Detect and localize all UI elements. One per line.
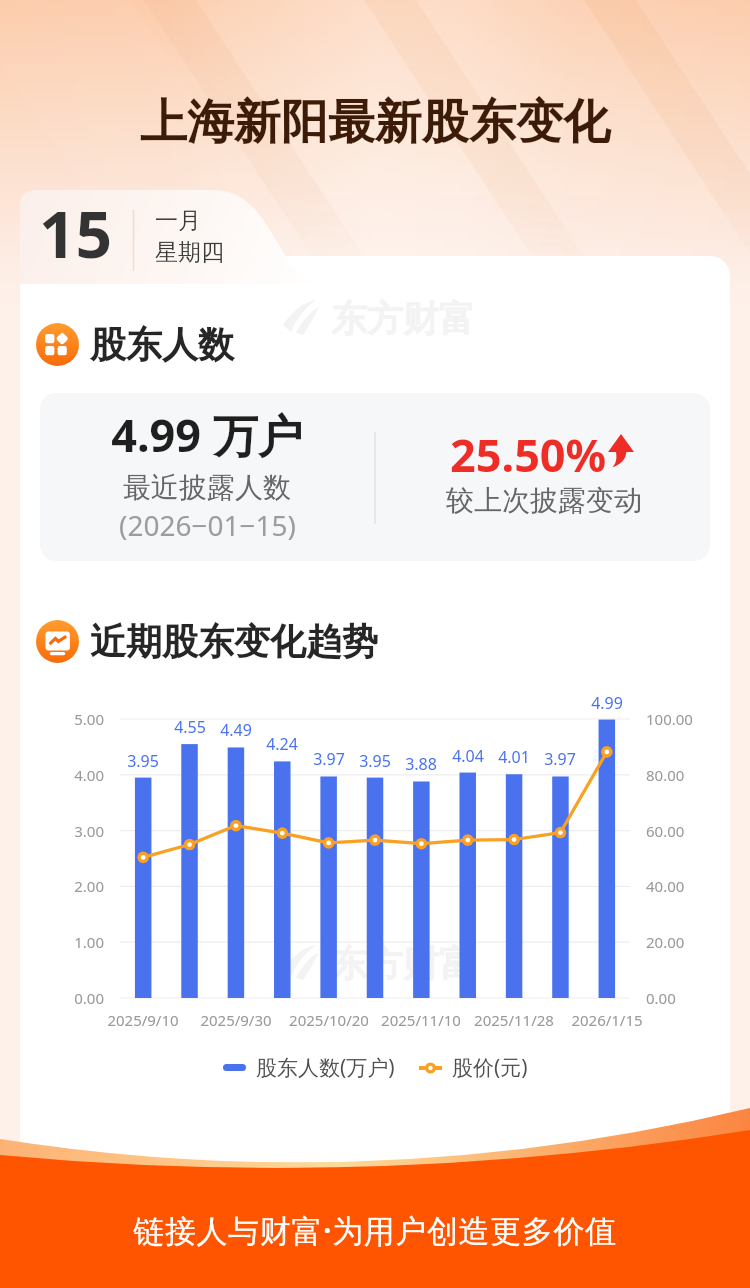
staticText: 股东人数(万户) xyxy=(256,1053,395,1082)
staticText: 股东人数 xyxy=(90,322,234,367)
staticText: 80.00 xyxy=(646,765,685,785)
button[interactable]: 股东人数 xyxy=(36,322,234,367)
staticText: 最近披露人数 xyxy=(123,470,291,505)
staticText: 股价(元) xyxy=(452,1053,528,1082)
staticText: 3.88 xyxy=(405,753,437,775)
staticText: 较上次披露变动 xyxy=(446,483,642,518)
staticText: 0.00 xyxy=(74,988,104,1008)
staticText: 东方财富 xyxy=(331,941,475,986)
staticText: 1.00 xyxy=(74,932,104,952)
staticText: 60.00 xyxy=(646,821,685,841)
staticText: 2.00 xyxy=(74,876,104,896)
staticText: 2025/11/28 xyxy=(474,1010,554,1030)
staticText: 2025/9/30 xyxy=(200,1010,272,1030)
staticText: 2025/11/10 xyxy=(381,1010,461,1030)
staticText: 2025/9/10 xyxy=(107,1010,179,1030)
staticText: 4.00 xyxy=(74,765,104,785)
staticText: 100.00 xyxy=(646,709,693,729)
staticText: 4.99 xyxy=(591,692,623,714)
button[interactable]: 近期股东变化趋势 xyxy=(36,619,378,664)
staticText: 4.49 xyxy=(220,719,252,741)
staticText: 4.55 xyxy=(174,716,206,738)
staticText: (2026−01−15) xyxy=(119,506,296,544)
staticText: 2025/10/20 xyxy=(289,1010,369,1030)
staticText: 20.00 xyxy=(646,932,685,952)
staticText: 链接人与财富·为用户创造更多价值 xyxy=(133,1209,617,1251)
button[interactable]: 15 xyxy=(20,190,280,284)
staticText: 近期股东变化趋势 xyxy=(90,619,378,664)
staticText: 15 xyxy=(39,190,113,277)
staticText: 0.00 xyxy=(646,988,676,1008)
staticText: 2026/1/15 xyxy=(571,1010,643,1030)
staticText: 上海新阳最新股东变化 xyxy=(140,93,610,152)
button[interactable]: 股东人数(万户) xyxy=(223,1053,395,1082)
other: 股东人数 xyxy=(36,323,79,366)
staticText: 40.00 xyxy=(646,876,685,896)
staticText: 3.97 xyxy=(544,748,576,770)
staticText: 3.95 xyxy=(127,750,159,772)
staticText: 25.50% xyxy=(450,424,607,478)
staticText: 4.04 xyxy=(452,745,484,767)
staticText: 4.24 xyxy=(266,733,298,755)
staticText: 东方财富 xyxy=(331,296,475,341)
staticText: 3.95 xyxy=(359,750,391,772)
button[interactable]: 25.50% xyxy=(375,424,710,478)
other: 近期股东变化趋势 xyxy=(36,620,79,663)
button[interactable]: 股价(元) xyxy=(419,1053,528,1082)
staticText: 4.99 万户 xyxy=(111,404,303,465)
staticText: 3.00 xyxy=(74,821,104,841)
staticText: 5.00 xyxy=(74,709,104,729)
staticText: 一月 xyxy=(155,206,201,235)
staticText: 星期四 xyxy=(155,238,224,267)
staticText: 4.01 xyxy=(498,746,530,768)
button[interactable] xyxy=(40,393,710,561)
staticText: 3.97 xyxy=(313,748,345,770)
